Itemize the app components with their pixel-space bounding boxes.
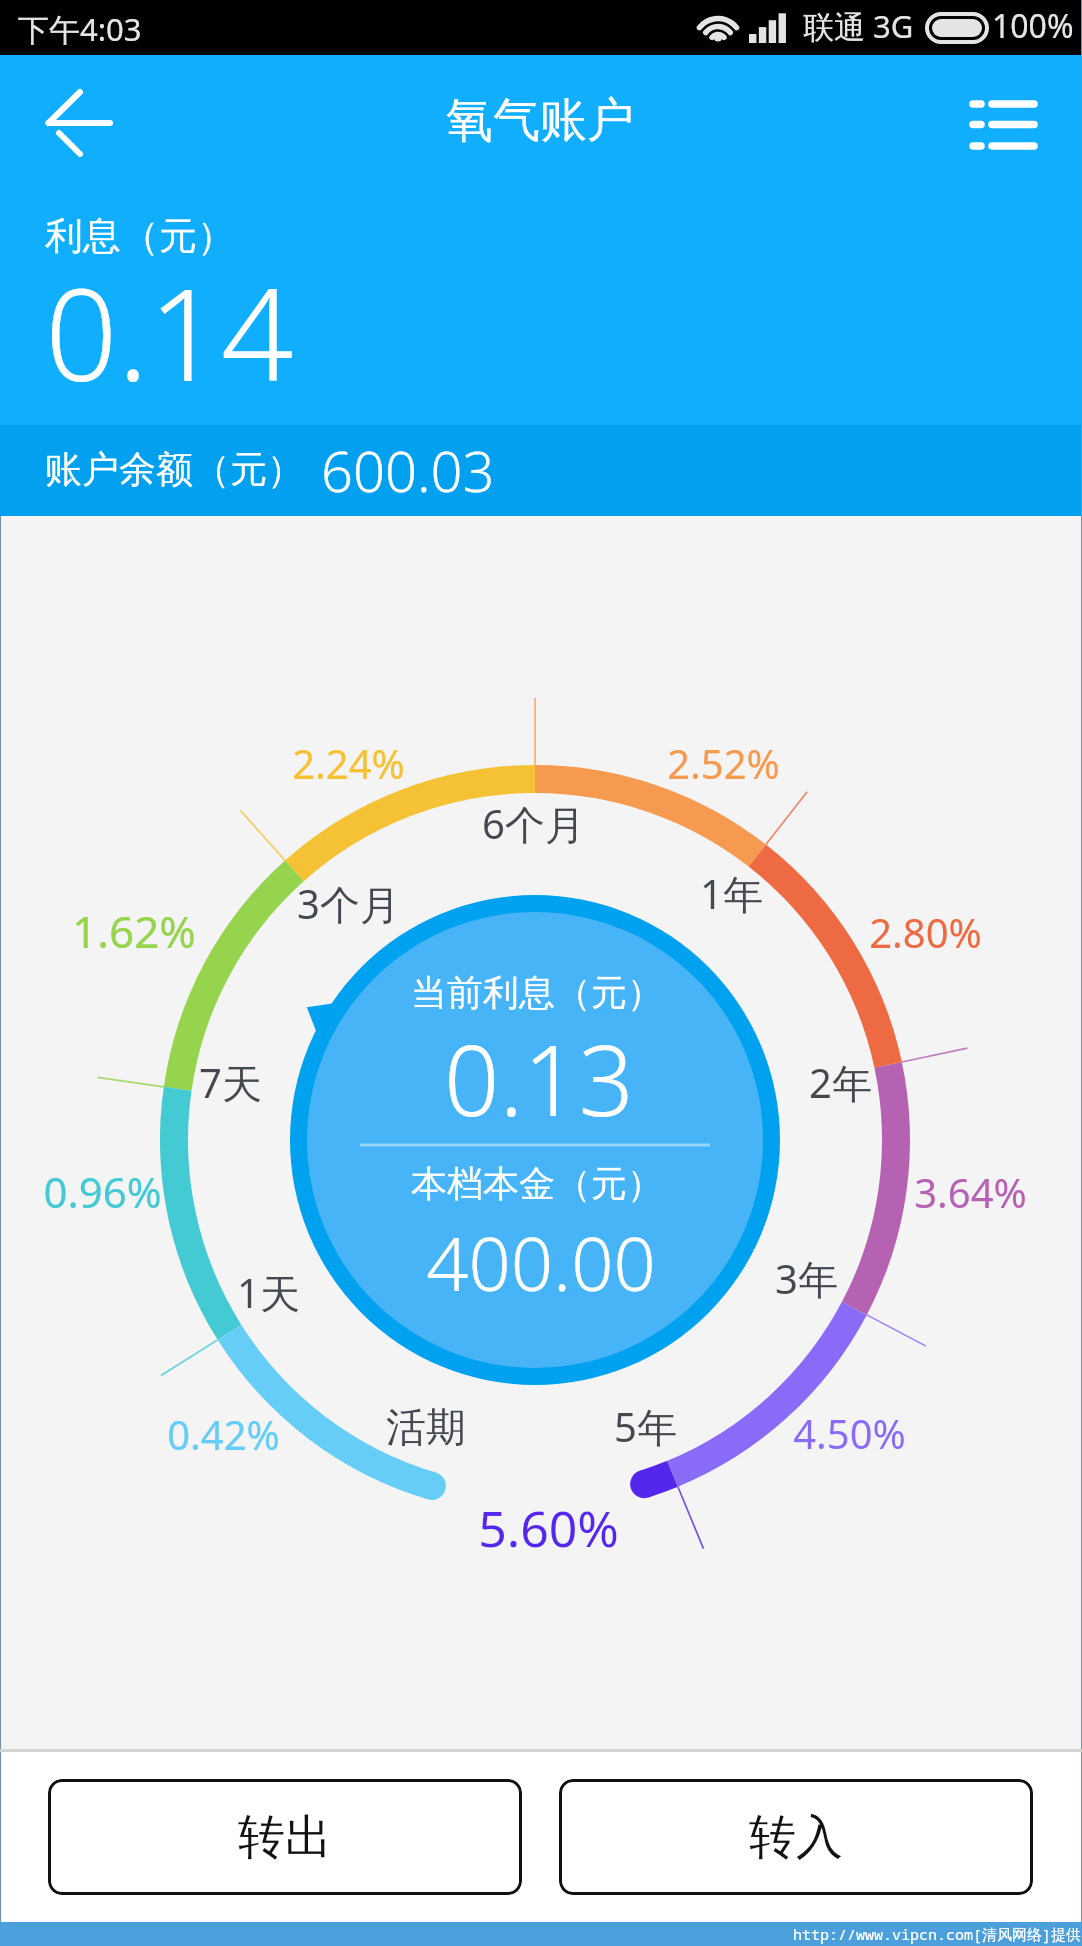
staticText: 600.03	[321, 432, 495, 508]
staticText: 0.96%	[43, 1163, 162, 1220]
staticText: 3年	[775, 1251, 838, 1306]
staticText: 1.62%	[72, 901, 196, 961]
button[interactable]: Menu	[945, 70, 1055, 180]
staticText: 当前利息（元）	[411, 970, 663, 1015]
staticText: 转出	[238, 1808, 332, 1867]
staticText: 活期	[386, 1402, 466, 1452]
staticText: 联通 3G	[803, 5, 914, 47]
staticText: 3个月	[297, 876, 400, 931]
staticText: 本档本金（元）	[411, 1161, 663, 1206]
staticText: 利息（元）	[45, 212, 235, 260]
staticText: 0.14	[45, 245, 294, 418]
staticText: 1年	[700, 866, 763, 921]
staticText: 400.00	[426, 1212, 656, 1313]
staticText: 3.64%	[914, 1165, 1027, 1219]
staticText: 0.13	[444, 1012, 634, 1144]
button[interactable]: 转入	[559, 1779, 1033, 1895]
button[interactable]: 转出	[48, 1779, 522, 1895]
staticText: 2.52%	[667, 736, 780, 790]
staticText: http://www.vipcn.com[清风网络]提供	[793, 1924, 1082, 1944]
staticText: 2.24%	[292, 736, 405, 790]
staticText: 6个月	[482, 796, 585, 851]
staticText: 100%	[992, 4, 1074, 48]
staticText: 2年	[809, 1055, 872, 1110]
staticText: 0.42%	[167, 1407, 280, 1461]
staticText: 2.80%	[869, 905, 982, 959]
staticText: 下午4:03	[18, 8, 142, 50]
staticText: 5年	[614, 1399, 677, 1454]
staticText: 4.50%	[793, 1406, 906, 1460]
button[interactable]: Back	[0, 63, 120, 183]
staticText: 5.60%	[478, 1494, 619, 1562]
staticText: 氧气账户	[446, 91, 634, 150]
staticText: 1天	[237, 1265, 300, 1320]
staticText: 账户余额（元）	[45, 446, 304, 493]
staticText: 转入	[749, 1808, 843, 1867]
staticText: 7天	[199, 1055, 262, 1110]
